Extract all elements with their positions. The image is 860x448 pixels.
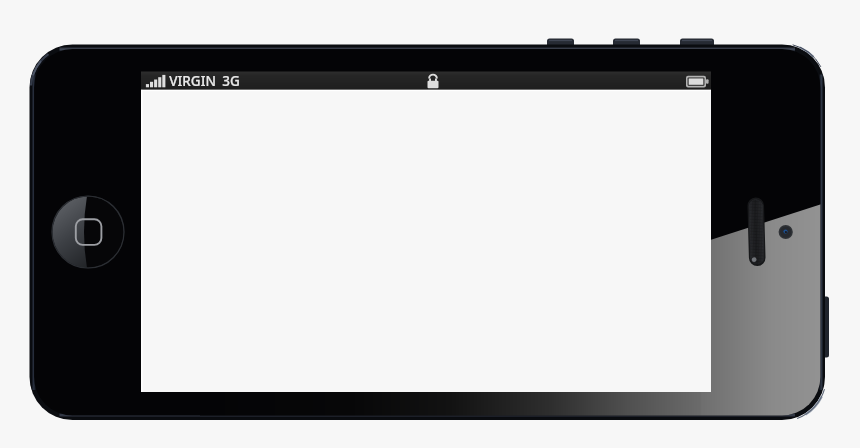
button[interactable]: iPhone xyxy=(30,45,826,421)
button[interactable]: Ring silent switch xyxy=(680,36,714,52)
button[interactable]: Volume up xyxy=(547,36,574,52)
button[interactable]: Display xyxy=(141,90,711,393)
button[interactable]: Carrier VIRGIN 3G xyxy=(145,73,245,88)
button[interactable]: Home xyxy=(52,196,124,268)
button[interactable]: Battery full xyxy=(684,73,710,88)
button[interactable]: Power xyxy=(816,297,829,358)
button[interactable]: Status bar xyxy=(141,72,711,90)
button[interactable]: Volume down xyxy=(613,36,640,52)
button[interactable]: Screen lock xyxy=(425,73,441,88)
